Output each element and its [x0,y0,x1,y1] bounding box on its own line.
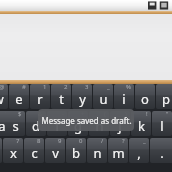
staticText: , [137,144,141,162]
staticText: a [0,117,6,135]
staticText: x [10,144,17,162]
button[interactable]: Message saved as draft. [38,109,134,131]
staticText: $ [18,111,22,118]
button[interactable]: p [156,84,172,109]
staticText: . [160,144,164,162]
staticText: ) [125,111,127,118]
staticText: r [37,90,43,108]
staticText: v [52,144,59,162]
staticText: k [138,117,145,135]
staticText: o [141,90,149,108]
staticText: & [38,111,43,118]
button[interactable]: . [150,138,172,163]
staticText: 8 [37,138,41,145]
staticText: 1 [43,84,47,91]
staticText: m [112,144,125,162]
staticText: s [12,117,19,135]
staticText: Message saved as draft. [41,115,132,126]
button[interactable]: - [47,111,67,136]
button[interactable]: / [87,138,107,163]
staticText: % [126,84,131,91]
button[interactable]: $ [5,111,25,136]
staticText: 2 [64,84,68,91]
button[interactable]: & [26,111,46,136]
staticText: y [79,90,86,108]
staticText: _ [107,84,110,91]
staticText: # [22,84,26,91]
button[interactable]: 0 [66,138,86,163]
staticText: 7 [16,138,20,145]
button[interactable]: @ [0,84,8,109]
button[interactable]: % [114,84,134,109]
other: Status icons [148,1,169,10]
staticText: g [74,117,82,135]
button[interactable]: 3 [72,84,92,109]
staticText: b [72,144,80,162]
staticText: p [162,90,170,108]
staticText: @ [0,84,5,91]
staticText: / [101,138,104,145]
button[interactable]: # [9,84,29,109]
button[interactable]: ! [131,111,151,136]
staticText: u [99,90,108,108]
button[interactable]: _ [93,84,113,109]
button[interactable]: + [68,111,88,136]
button[interactable]: ) [110,111,130,136]
staticText: ? [122,138,125,145]
staticText: i [122,90,126,108]
staticText: j [118,117,122,135]
staticText: 0 [79,138,83,145]
staticText: t [59,90,64,108]
staticText: c [31,144,38,162]
button[interactable]: 7 [3,138,23,163]
button[interactable]: o [135,84,155,109]
staticText: " [166,111,169,118]
button[interactable]: _ [129,138,149,163]
button[interactable]: 2 [51,84,71,109]
staticText: 3 [85,84,89,91]
button[interactable]: 9 [45,138,65,163]
staticText: 9 [58,138,62,145]
button[interactable]: * [0,111,12,136]
staticText: ! [146,111,148,118]
button[interactable]: 1 [30,84,50,109]
staticText: e [15,90,23,108]
staticText: f [55,117,60,135]
staticText: _ [143,138,146,145]
staticText: * [5,111,9,118]
staticText: h [95,117,104,135]
button[interactable]: " [152,111,172,136]
button[interactable]: 8 [24,138,44,163]
button[interactable]: ( [89,111,109,136]
button[interactable]: 6 [0,138,2,163]
button[interactable]: ? [108,138,128,163]
staticText: l [160,117,164,135]
staticText: d [32,117,40,135]
staticText: w [0,90,4,108]
staticText: n [93,144,102,162]
